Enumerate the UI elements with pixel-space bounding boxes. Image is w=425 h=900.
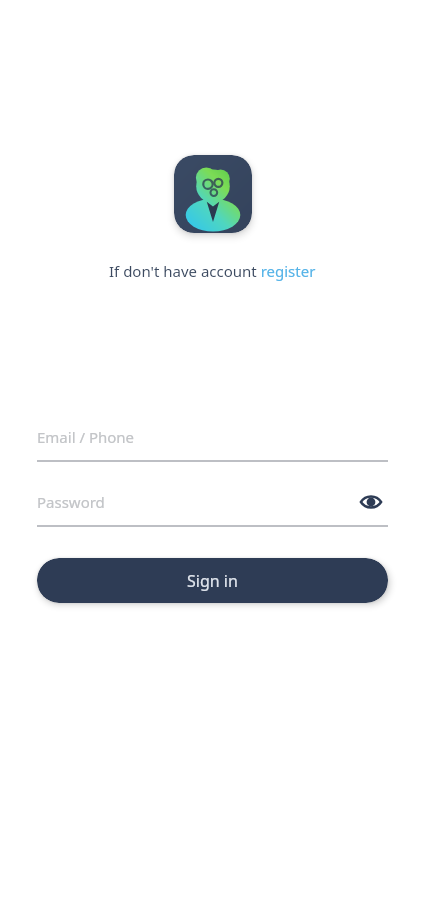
button[interactable]: Email / Phone [37, 420, 388, 454]
button[interactable]: Sign in [37, 558, 388, 603]
button[interactable]: Password [37, 485, 388, 519]
staticText: Sign in [187, 570, 238, 592]
staticText: Email / Phone [37, 427, 388, 447]
button[interactable]: If don't have account register [109, 261, 316, 281]
button[interactable]: Show password [354, 485, 388, 519]
staticText: Password [37, 492, 354, 512]
